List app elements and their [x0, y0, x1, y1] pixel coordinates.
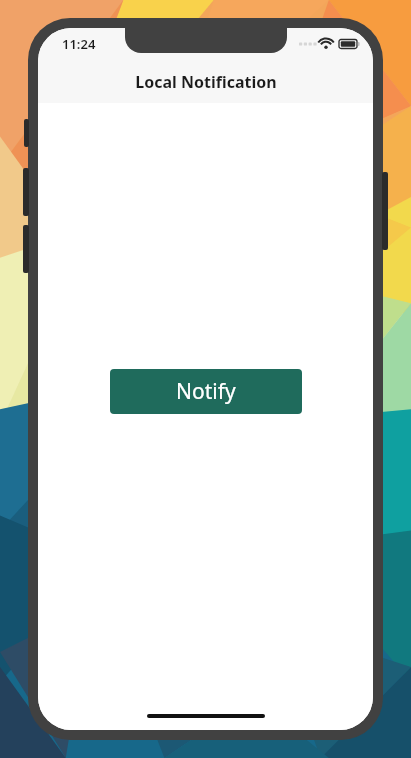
other: Notch [125, 28, 287, 53]
button[interactable]: Notify [110, 369, 302, 414]
staticText: Local Notification [135, 71, 277, 93]
staticText: 11:24 [62, 35, 96, 53]
staticText: Notify [176, 377, 236, 406]
